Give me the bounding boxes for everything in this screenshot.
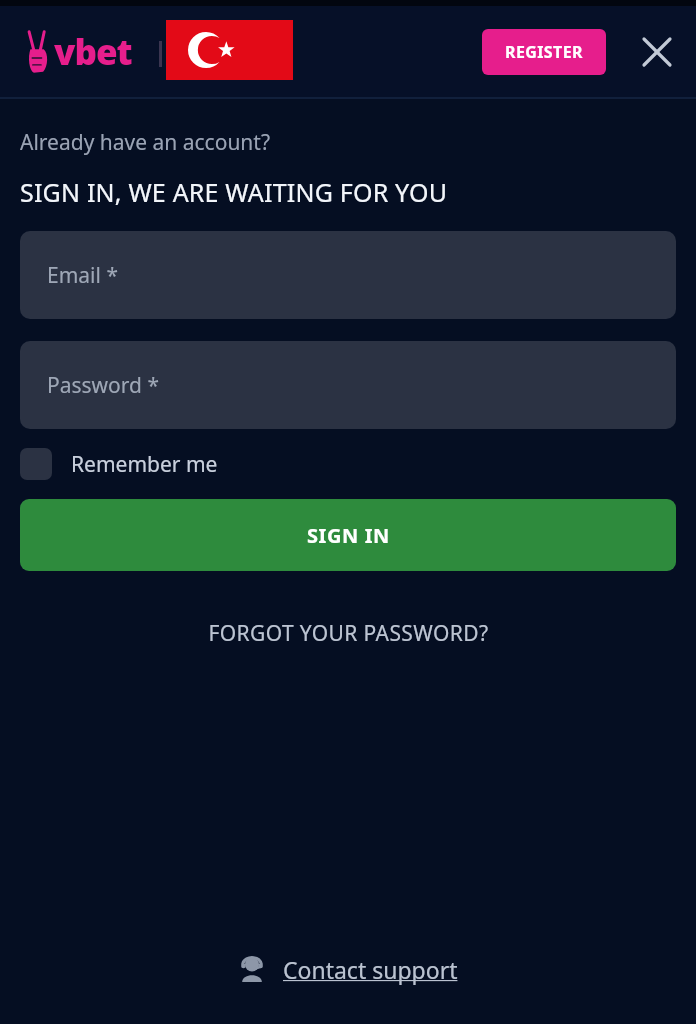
button[interactable]: Email * [20,231,676,319]
staticText: SIGN IN [307,522,390,549]
button[interactable]: Language: Turkish [166,20,293,80]
button[interactable]: Vbet home [26,28,132,76]
button[interactable]: SIGN IN [20,499,676,571]
staticText: Email * [47,261,118,290]
button[interactable]: REGISTER [482,29,606,75]
staticText: Remember me [71,450,218,479]
staticText: vbet [54,28,132,76]
button[interactable]: FORGOT YOUR PASSWORD? [20,607,676,659]
staticText: Already have an account? [20,128,271,157]
button[interactable]: Remember me [20,448,676,480]
staticText: FORGOT YOUR PASSWORD? [208,619,489,648]
button[interactable]: Close [634,29,680,75]
button[interactable]: Contact support [0,934,696,1004]
staticText: Contact support [283,954,458,985]
staticText: Password * [47,371,160,400]
button[interactable]: Password * [20,341,676,429]
staticText: SIGN IN, WE ARE WAITING FOR YOU [20,175,448,209]
staticText: REGISTER [505,41,583,63]
